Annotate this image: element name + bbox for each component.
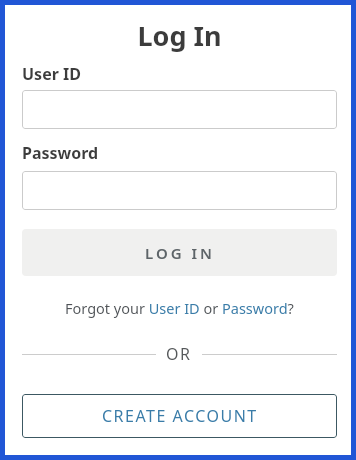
- button[interactable]: [22, 171, 337, 210]
- staticText: LOG IN: [145, 243, 215, 263]
- staticText: User ID: [22, 63, 81, 85]
- staticText: OR: [166, 343, 192, 365]
- staticText: Forgot your User ID or Password?: [65, 298, 294, 318]
- button[interactable]: Forgot your User ID or Password?: [22, 298, 337, 318]
- button[interactable]: CREATE ACCOUNT: [22, 394, 337, 438]
- staticText: Password: [22, 142, 99, 164]
- staticText: Log In: [22, 17, 337, 54]
- button[interactable]: LOG IN: [22, 229, 337, 276]
- button[interactable]: [22, 90, 337, 129]
- staticText: CREATE ACCOUNT: [102, 405, 258, 427]
